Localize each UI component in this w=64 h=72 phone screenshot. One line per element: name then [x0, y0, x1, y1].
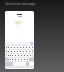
button[interactable]: Key	[20, 54, 23, 57]
button[interactable]: Key	[11, 54, 14, 57]
button[interactable]: Key	[28, 50, 31, 53]
button[interactable]: Key	[14, 58, 17, 61]
button[interactable]: Key	[25, 50, 28, 53]
button[interactable]: Key	[17, 54, 20, 57]
button[interactable]: Key	[9, 58, 11, 61]
button[interactable]: Key	[16, 46, 19, 49]
button[interactable]: Key	[31, 50, 34, 53]
button[interactable]: Key	[17, 58, 20, 61]
button[interactable]: Key	[20, 58, 23, 61]
button[interactable]: Send voice message	[30, 42, 33, 45]
button[interactable]: Key	[13, 46, 16, 49]
button[interactable]: Key	[26, 54, 29, 57]
button[interactable]: Key	[14, 54, 17, 57]
button[interactable]: Key	[23, 54, 26, 57]
staticText: Send voice message	[5, 2, 36, 6]
button[interactable]: Key	[19, 50, 22, 53]
button[interactable]: Key	[10, 50, 13, 53]
button[interactable]: Key	[11, 58, 14, 61]
button[interactable]: Key	[7, 46, 10, 49]
button[interactable]: Key	[28, 46, 31, 49]
button[interactable]: Key	[13, 50, 16, 53]
button[interactable]: Key	[29, 54, 32, 57]
button[interactable]: Key	[10, 46, 13, 49]
button[interactable]: Key	[25, 46, 28, 49]
button[interactable]: Key	[23, 58, 26, 61]
button[interactable]: Key	[16, 50, 19, 53]
button[interactable]: Key	[19, 46, 22, 49]
button[interactable]: Key	[5, 46, 7, 49]
button[interactable]: Key	[22, 46, 25, 49]
button[interactable]: Key	[31, 46, 34, 49]
button[interactable]: Key	[5, 50, 7, 53]
button[interactable]: Key	[7, 50, 10, 53]
button[interactable]: Key	[7, 54, 9, 57]
button[interactable]: Key	[26, 58, 29, 61]
button[interactable]: Key	[9, 54, 11, 57]
button[interactable]: Key	[22, 50, 25, 53]
